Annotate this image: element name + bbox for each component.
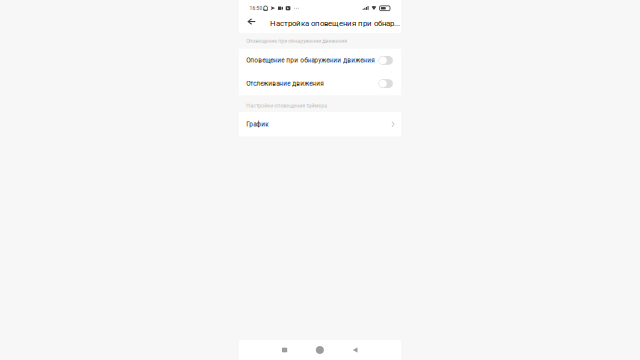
staticText: 16:50: [250, 5, 263, 11]
button[interactable]: График: [239, 112, 401, 136]
staticText: Настройка оповещения при обнар...: [270, 19, 400, 28]
staticText: График: [246, 120, 268, 128]
staticText: Оповещение при обнаружении движения: [246, 57, 375, 64]
button[interactable]: Back: [243, 15, 261, 31]
button[interactable]: Оповещение при обнаружении движения: [239, 49, 401, 72]
staticText: Оповещение при обнаружении движения: [246, 38, 347, 44]
button[interactable]: Отслеживание движения: [239, 72, 401, 95]
button[interactable]: Back: [342, 340, 368, 360]
button[interactable]: Home: [307, 340, 333, 360]
button[interactable]: Recent apps: [272, 340, 298, 360]
staticText: Настройки оповещения таймера: [246, 103, 327, 109]
staticText: Отслеживание движения: [246, 80, 324, 87]
